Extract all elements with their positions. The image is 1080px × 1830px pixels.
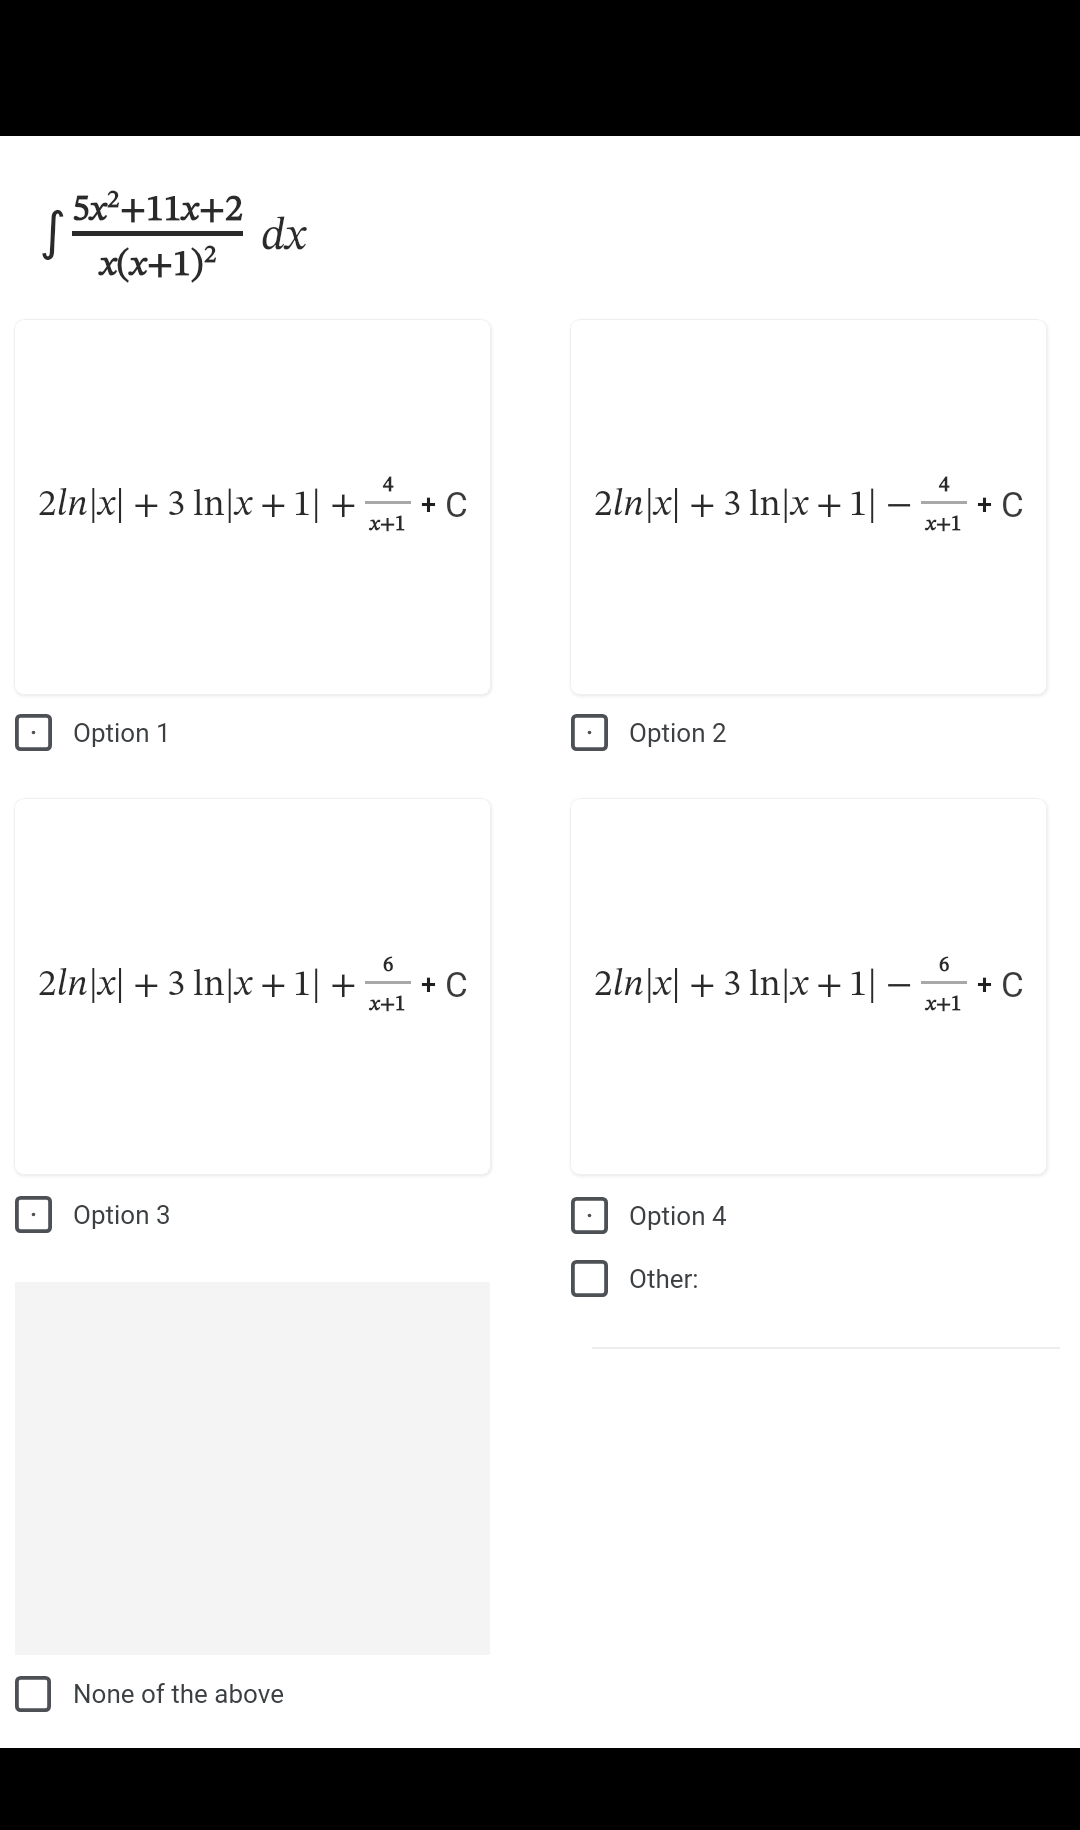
- staticText: |x|: [644, 487, 681, 524]
- staticText: +1): [147, 248, 204, 284]
- staticText: +: [330, 487, 357, 524]
- button[interactable]: Option 1: [15, 714, 52, 751]
- staticText: ln|: [749, 487, 791, 524]
- staticText: +: [260, 487, 287, 524]
- button[interactable]: 2: [14, 798, 491, 1175]
- staticText: x: [100, 248, 117, 284]
- staticText: x: [926, 514, 936, 535]
- staticText: −: [886, 487, 913, 524]
- staticText: Option 1: [73, 718, 171, 748]
- button[interactable]: 2: [570, 798, 1047, 1175]
- button[interactable]: Option 2: [571, 714, 608, 751]
- staticText: x: [130, 248, 147, 284]
- staticText: 5: [72, 193, 90, 229]
- staticText: 6: [383, 955, 394, 976]
- staticText: x: [90, 193, 107, 229]
- button[interactable]: Other:: [571, 1260, 699, 1297]
- button[interactable]: Option 1: [15, 714, 171, 751]
- staticText: C: [445, 485, 468, 526]
- staticText: +1: [380, 514, 406, 535]
- staticText: ∫: [39, 201, 67, 262]
- staticText: |x|: [88, 967, 125, 1004]
- staticText: (: [117, 248, 130, 284]
- staticText: 2: [38, 487, 57, 524]
- button[interactable]: 2: [570, 319, 1047, 695]
- button[interactable]: Option 4: [571, 1197, 608, 1234]
- staticText: ln|: [193, 967, 235, 1004]
- staticText: |x|: [88, 487, 125, 524]
- button[interactable]: Option 3: [15, 1196, 171, 1233]
- staticText: +: [421, 969, 437, 1001]
- staticText: Option 4: [629, 1201, 727, 1231]
- staticText: +11: [120, 193, 182, 229]
- staticText: C: [1001, 485, 1024, 526]
- staticText: +: [133, 487, 160, 524]
- staticText: +1: [936, 994, 962, 1015]
- staticText: +1: [380, 994, 406, 1015]
- staticText: 4: [939, 475, 950, 496]
- staticText: ln|: [749, 967, 791, 1004]
- staticText: +: [330, 967, 357, 1004]
- staticText: x: [370, 514, 380, 535]
- staticText: C: [1001, 965, 1024, 1006]
- staticText: +: [689, 967, 716, 1004]
- staticText: 3: [167, 967, 186, 1004]
- button[interactable]: Option 2: [571, 714, 727, 751]
- staticText: dx: [261, 215, 306, 260]
- staticText: +: [816, 487, 843, 524]
- staticText: ln: [613, 487, 644, 524]
- staticText: +1: [936, 514, 962, 535]
- staticText: +: [421, 489, 437, 521]
- staticText: 2: [38, 967, 57, 1004]
- staticText: C: [445, 965, 468, 1006]
- staticText: +: [260, 967, 287, 1004]
- staticText: 1|: [293, 487, 322, 524]
- staticText: +: [977, 969, 993, 1001]
- button[interactable]: None of the above: [15, 1676, 51, 1712]
- button[interactable]: Option 4: [571, 1197, 727, 1234]
- staticText: |x|: [644, 967, 681, 1004]
- staticText: x: [182, 193, 199, 229]
- staticText: 3: [167, 487, 186, 524]
- staticText: x: [370, 994, 380, 1015]
- staticText: x: [235, 967, 252, 1004]
- staticText: 4: [383, 475, 394, 496]
- staticText: ln: [57, 487, 88, 524]
- staticText: 1|: [849, 967, 878, 1004]
- staticText: x: [235, 487, 252, 524]
- staticText: ln: [57, 967, 88, 1004]
- staticText: 3: [723, 487, 742, 524]
- staticText: x: [791, 967, 808, 1004]
- staticText: 2: [107, 188, 120, 213]
- staticText: +: [133, 967, 160, 1004]
- staticText: +: [689, 487, 716, 524]
- staticText: ln: [613, 967, 644, 1004]
- staticText: Option 2: [629, 718, 727, 748]
- staticText: 3: [723, 967, 742, 1004]
- staticText: Other:: [629, 1264, 699, 1294]
- staticText: +2: [199, 193, 243, 229]
- staticText: 1|: [293, 967, 322, 1004]
- staticText: 2: [594, 967, 613, 1004]
- staticText: 6: [939, 955, 950, 976]
- staticText: 2: [594, 487, 613, 524]
- button[interactable]: Option 3: [15, 1196, 52, 1233]
- staticText: x: [791, 487, 808, 524]
- staticText: x: [926, 994, 936, 1015]
- staticText: +: [977, 489, 993, 521]
- button[interactable]: 2: [14, 319, 491, 695]
- staticText: 2: [204, 243, 217, 268]
- staticText: ln|: [193, 487, 235, 524]
- button[interactable]: Other:: [571, 1260, 608, 1297]
- staticText: None of the above: [73, 1679, 284, 1709]
- staticText: 1|: [849, 487, 878, 524]
- button[interactable]: None of the above: [15, 1676, 284, 1712]
- staticText: −: [886, 967, 913, 1004]
- staticText: Option 3: [73, 1200, 171, 1230]
- staticText: +: [816, 967, 843, 1004]
